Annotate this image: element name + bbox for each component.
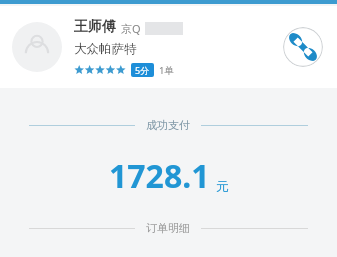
button[interactable]: 王师傅	[0, 6, 337, 88]
staticText: 成功支付	[146, 118, 190, 132]
staticText: 大众帕萨特	[74, 41, 137, 57]
staticText: 订单明细	[146, 221, 190, 235]
staticText: 5分	[135, 64, 150, 76]
staticText: 王师傅	[74, 18, 116, 36]
staticText: 1728.1	[109, 154, 210, 198]
button[interactable]: Call driver	[283, 27, 323, 67]
staticText: 京Q	[121, 21, 141, 36]
staticText: 1单	[159, 64, 174, 77]
staticText: 元	[216, 178, 229, 194]
